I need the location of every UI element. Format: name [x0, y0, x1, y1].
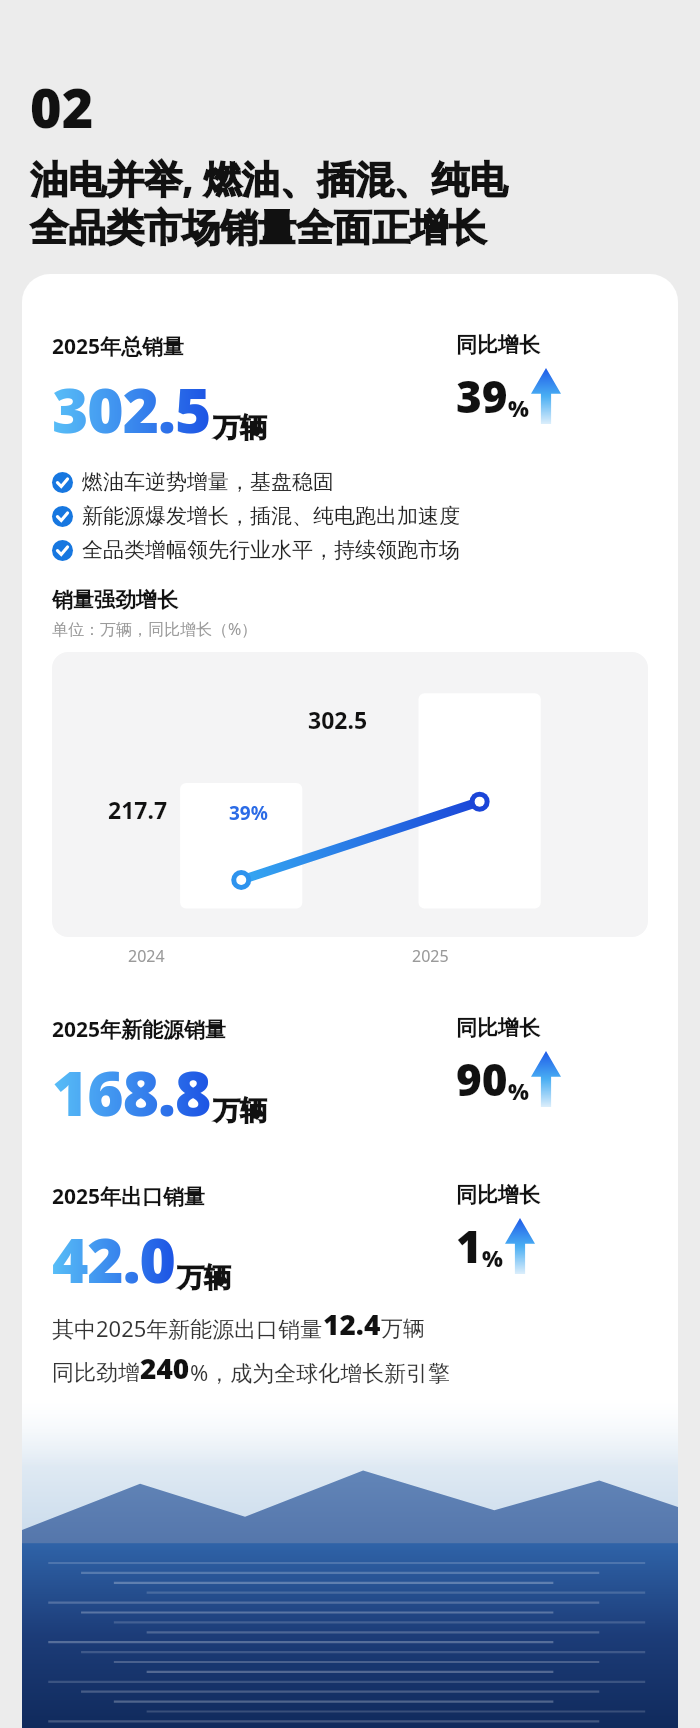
staticText: 168.8 — [52, 1050, 211, 1134]
staticText: 2025 — [412, 945, 449, 967]
staticText: 新能源爆发增长，插混、纯电跑出加速度 — [82, 503, 460, 529]
staticText: 90 — [456, 1049, 508, 1109]
staticText: 万辆 — [177, 1261, 231, 1295]
staticText: 其中2025年新能源出口销量 — [52, 1313, 323, 1343]
staticText: 万辆 — [213, 411, 267, 445]
staticText: 全品类市场销量全面正增长 — [30, 204, 486, 252]
staticText: 油电并举, 燃油、插混、纯电 — [30, 152, 508, 204]
staticText: 同比增长 — [456, 1182, 540, 1208]
staticText: 02 — [30, 70, 94, 144]
other: 上升 — [531, 368, 561, 424]
staticText: 2025年新能源销量 — [52, 1015, 227, 1044]
staticText: 42.0 — [52, 1217, 175, 1301]
staticText: 39% — [229, 800, 268, 826]
staticText: % — [508, 1076, 529, 1106]
staticText: %，成为全球化增长新引擎 — [190, 1357, 451, 1387]
staticText: 240 — [140, 1349, 190, 1387]
staticText: 1 — [456, 1216, 482, 1276]
staticText: 销量强劲增长 — [52, 587, 178, 613]
staticText: % — [508, 393, 529, 423]
staticText: % — [482, 1243, 503, 1273]
staticText: 39 — [456, 366, 508, 426]
staticText: 同比增长 — [456, 1015, 540, 1041]
staticText: 302.5 — [52, 367, 211, 451]
staticText: 2024 — [128, 945, 165, 967]
staticText: 302.5 — [308, 704, 368, 735]
staticText: 同比增长 — [456, 332, 540, 358]
staticText: 2025年出口销量 — [52, 1182, 206, 1211]
staticText: 2025年总销量 — [52, 332, 185, 361]
staticText: 单位：万辆，同比增长（%） — [52, 618, 258, 640]
other: 上升 — [505, 1218, 535, 1274]
staticText: 全品类增幅领先行业水平，持续领跑市场 — [82, 537, 460, 563]
staticText: 燃油车逆势增量，基盘稳固 — [82, 469, 334, 495]
other: 上升 — [531, 1051, 561, 1107]
staticText: 217.7 — [108, 794, 168, 825]
staticText: 12.4 — [323, 1305, 381, 1343]
staticText: 同比劲增 — [52, 1359, 140, 1387]
staticText: 万辆 — [213, 1094, 267, 1128]
staticText: 万辆 — [381, 1315, 425, 1343]
